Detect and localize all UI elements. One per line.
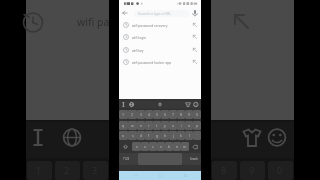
staticText: 6 bbox=[164, 112, 167, 117]
button[interactable]: q bbox=[119, 121, 128, 130]
button[interactable]: Search bbox=[187, 153, 201, 165]
button[interactable]: 3 bbox=[137, 110, 145, 119]
staticText: 2 bbox=[131, 112, 134, 117]
button[interactable]: f bbox=[145, 131, 153, 140]
staticText: 8 bbox=[180, 112, 183, 117]
staticText: h bbox=[164, 133, 167, 138]
staticText: l bbox=[189, 133, 190, 138]
button[interactable]: Search or type a URL bbox=[134, 10, 189, 17]
button[interactable]: Backspace bbox=[189, 142, 201, 151]
button[interactable]: n bbox=[173, 142, 181, 151]
button[interactable]: l bbox=[185, 131, 193, 140]
staticText: 1 bbox=[122, 112, 125, 117]
button[interactable]: wifi key bbox=[119, 43, 201, 56]
button[interactable]: wifi login bbox=[119, 31, 201, 43]
staticText: z bbox=[136, 144, 138, 149]
staticText: c bbox=[152, 144, 154, 149]
button[interactable]: p bbox=[193, 121, 201, 130]
staticText: e bbox=[140, 123, 143, 128]
button[interactable]: k bbox=[177, 131, 185, 140]
staticText: 1 bbox=[36, 164, 42, 176]
staticText: wifi login bbox=[132, 35, 147, 39]
button[interactable]: b bbox=[165, 142, 173, 151]
button[interactable]: 9 bbox=[185, 110, 193, 119]
staticText: 7 bbox=[172, 112, 175, 117]
staticText: u bbox=[172, 123, 175, 128]
button[interactable]: z bbox=[132, 142, 141, 151]
button[interactable]: Back bbox=[120, 8, 130, 18]
button[interactable]: wifi password hacker app bbox=[119, 56, 201, 68]
button[interactable]: r bbox=[145, 121, 153, 130]
button[interactable]: 6 bbox=[161, 110, 169, 119]
button[interactable]: m bbox=[181, 142, 189, 151]
staticText: wifi pass bbox=[77, 15, 120, 29]
staticText: 0 bbox=[196, 112, 199, 117]
button[interactable]: d bbox=[137, 131, 145, 140]
button[interactable]: g bbox=[153, 131, 161, 140]
button[interactable]: 2 bbox=[128, 110, 137, 119]
button[interactable]: a bbox=[119, 131, 128, 140]
staticText: a bbox=[122, 133, 125, 138]
staticText: y bbox=[164, 123, 166, 128]
staticText: 8 bbox=[221, 164, 227, 176]
staticText: j bbox=[173, 133, 174, 138]
button[interactable]: j bbox=[169, 131, 177, 140]
staticText: 0 bbox=[277, 164, 283, 176]
staticText: g bbox=[156, 133, 159, 138]
staticText: 9 bbox=[188, 112, 191, 117]
staticText: Search bbox=[190, 157, 199, 161]
button[interactable]: e bbox=[137, 121, 145, 130]
staticText: m bbox=[183, 144, 187, 149]
button[interactable]: w bbox=[128, 121, 137, 130]
button[interactable]: Voice search bbox=[190, 8, 200, 18]
staticText: d bbox=[140, 133, 143, 138]
staticText: i bbox=[181, 123, 182, 128]
button[interactable]: Shift bbox=[119, 142, 132, 151]
staticText: 3 bbox=[92, 164, 98, 176]
button[interactable]: x bbox=[141, 142, 149, 151]
button[interactable]: v bbox=[157, 142, 165, 151]
button[interactable]: wifi password recovery bbox=[119, 19, 201, 31]
staticText: ?123 bbox=[123, 157, 130, 161]
button[interactable]: 4 bbox=[145, 110, 153, 119]
staticText: v bbox=[160, 144, 162, 149]
staticText: b bbox=[168, 144, 171, 149]
staticText: s bbox=[132, 133, 134, 138]
button[interactable]: y bbox=[161, 121, 169, 130]
staticText: p bbox=[196, 123, 199, 128]
staticText: k bbox=[180, 133, 182, 138]
button[interactable]: 0 bbox=[193, 110, 201, 119]
button[interactable]: ' bbox=[193, 131, 201, 140]
button[interactable]: t bbox=[153, 121, 161, 130]
staticText: 5 bbox=[156, 112, 159, 117]
staticText: 4 bbox=[148, 112, 151, 117]
staticText: 3 bbox=[140, 112, 143, 117]
staticText: 9 bbox=[249, 164, 255, 176]
staticText: f bbox=[148, 133, 150, 138]
button[interactable]: o bbox=[185, 121, 193, 130]
button[interactable]: 5 bbox=[153, 110, 161, 119]
staticText: r bbox=[148, 123, 150, 128]
staticText: ' bbox=[197, 133, 198, 138]
staticText: wifi password hacker app bbox=[132, 60, 172, 64]
button[interactable]: 7 bbox=[169, 110, 177, 119]
staticText: x bbox=[144, 144, 146, 149]
button[interactable]: u bbox=[169, 121, 177, 130]
button[interactable]: ?123 bbox=[119, 153, 133, 165]
staticText: o bbox=[188, 123, 191, 128]
staticText: q bbox=[122, 123, 125, 128]
button[interactable]: c bbox=[149, 142, 157, 151]
button[interactable]: h bbox=[161, 131, 169, 140]
staticText: wifi key bbox=[132, 48, 144, 52]
button[interactable]: 1 bbox=[119, 110, 128, 119]
button[interactable]: i bbox=[177, 121, 185, 130]
button[interactable]: s bbox=[128, 131, 137, 140]
button[interactable]: 8 bbox=[177, 110, 185, 119]
staticText: wifi password recovery bbox=[132, 23, 168, 27]
